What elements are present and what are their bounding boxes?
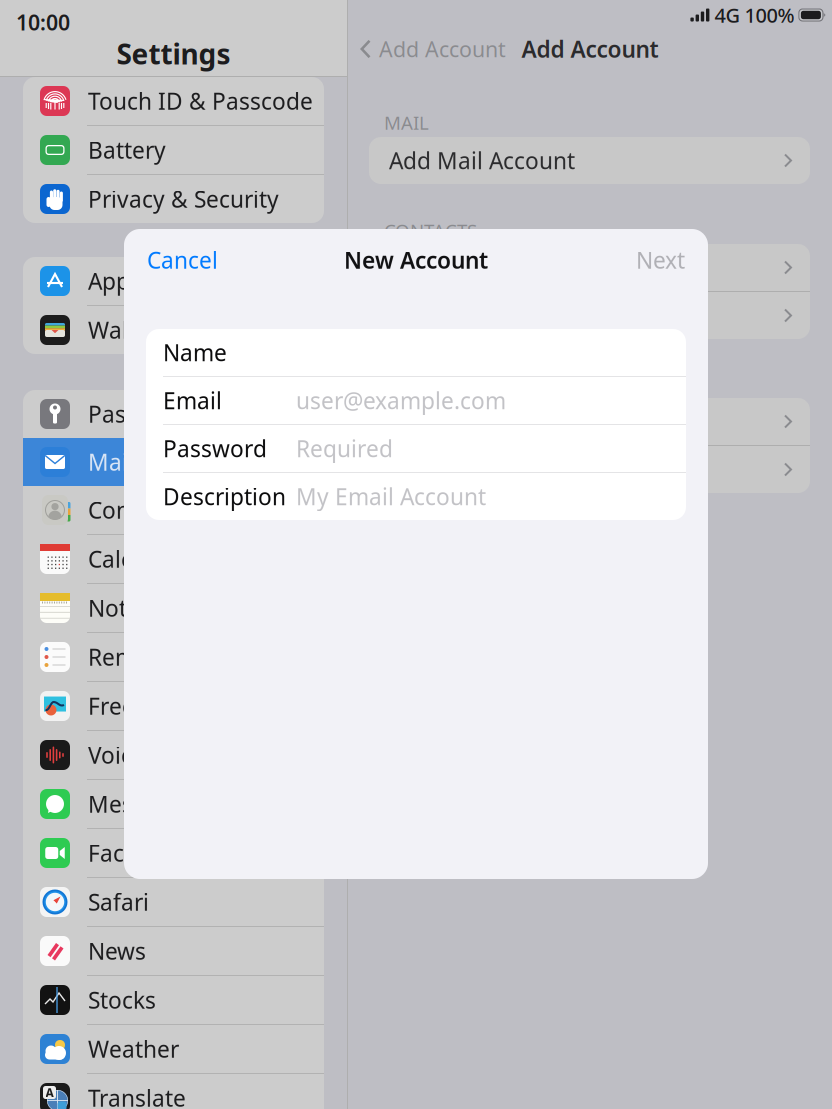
button[interactable]: Freeform [23, 682, 324, 730]
staticText: Settings [116, 35, 230, 72]
staticText: Add Account [379, 35, 506, 63]
staticText: Reminders [88, 642, 203, 672]
button[interactable]: Voice Memos [23, 731, 324, 779]
staticText: App Store [88, 266, 192, 296]
staticText: A [45, 1084, 53, 1100]
staticText: Required [296, 433, 393, 463]
staticText: Email [163, 385, 222, 415]
button[interactable]: Calendar [23, 535, 324, 583]
button[interactable]: Touch ID & Passcode [23, 77, 324, 125]
button[interactable]: Battery [23, 126, 324, 174]
staticText: News [88, 936, 146, 966]
button[interactable]: A [23, 1074, 324, 1109]
button[interactable]: Messages [23, 780, 324, 828]
staticText: Default Calendar [389, 454, 570, 484]
button[interactable]: FaceTime [23, 829, 324, 877]
staticText: Wallet & Apple Pay [88, 315, 290, 345]
staticText: Messages [88, 789, 195, 819]
button[interactable]: Passwords [23, 390, 324, 438]
staticText: FaceTime [88, 838, 190, 868]
staticText: Add Account [521, 34, 658, 64]
staticText: Calendar [88, 544, 184, 574]
button[interactable]: Notes [23, 584, 324, 632]
staticText: Description [163, 481, 286, 511]
staticText: Contacts [88, 495, 181, 525]
staticText: Add Calendar Account [389, 406, 625, 436]
staticText: MAIL [384, 110, 429, 135]
staticText: New Account [344, 245, 488, 275]
button[interactable]: Next [598, 237, 708, 283]
staticText: Cancel [147, 245, 218, 275]
button[interactable]: Cancel [124, 237, 234, 283]
button[interactable]: Default Account [369, 292, 810, 339]
button[interactable]: App Store [23, 257, 324, 305]
staticText: Touch ID & Passcode [88, 86, 313, 116]
staticText: Privacy & Security [88, 184, 279, 214]
staticText: 10:00 [16, 8, 70, 36]
staticText: Notes [88, 593, 151, 623]
button[interactable]: Contacts [23, 486, 324, 534]
staticText: Battery [88, 135, 166, 165]
staticText: user@example.com [296, 385, 506, 415]
button[interactable]: Reminders [23, 633, 324, 681]
staticText: Mail [88, 447, 134, 477]
staticText: 100% [744, 2, 794, 28]
button[interactable]: Add Calendar Account [369, 398, 810, 445]
button[interactable]: Safari [23, 878, 324, 926]
staticText: CALENDARS [384, 372, 489, 397]
staticText: Password [163, 433, 267, 463]
staticText: Name [163, 337, 227, 367]
button[interactable]: Stocks [23, 976, 324, 1024]
staticText: 4G [714, 2, 740, 28]
button[interactable]: Add Contacts Account [369, 244, 810, 291]
staticText: Voice Memos [88, 740, 231, 770]
button[interactable]: News [23, 927, 324, 975]
button[interactable]: Default Calendar [369, 446, 810, 493]
button[interactable]: Mail [23, 438, 324, 486]
staticText: Add Contacts Account [389, 252, 622, 282]
staticText: Next [636, 245, 685, 275]
button[interactable]: Weather [23, 1025, 324, 1073]
staticText: My Email Account [296, 481, 486, 511]
button[interactable]: Privacy & Security [23, 175, 324, 223]
button[interactable]: Add Account [360, 34, 560, 64]
staticText: Translate [88, 1083, 186, 1109]
staticText: Weather [88, 1034, 179, 1064]
staticText: Add Mail Account [389, 145, 575, 175]
staticText: Safari [88, 887, 149, 917]
staticText: Stocks [88, 985, 156, 1015]
staticText: Freeform [88, 691, 187, 721]
button[interactable]: Add Mail Account [369, 137, 810, 184]
staticText: CONTACTS [384, 218, 477, 243]
staticText: Passwords [88, 399, 203, 429]
button[interactable]: Wallet & Apple Pay [23, 306, 324, 354]
